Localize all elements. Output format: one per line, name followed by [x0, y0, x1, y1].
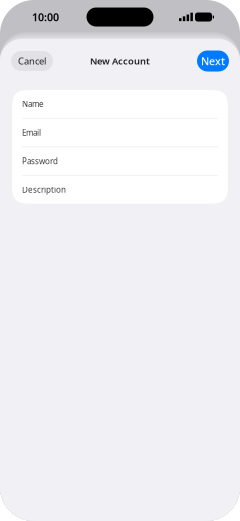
staticText: Password — [22, 156, 58, 166]
staticText: Email — [22, 127, 41, 138]
button[interactable]: Next — [197, 50, 229, 71]
staticText: 10:00 — [32, 10, 59, 24]
staticText: Next — [201, 54, 225, 68]
button[interactable]: Cancel — [11, 51, 53, 71]
staticText: Cancel — [18, 55, 46, 67]
button[interactable]: Email — [12, 118, 228, 146]
button[interactable]: Password — [12, 147, 228, 175]
staticText: Name — [22, 99, 44, 109]
staticText: Description — [22, 184, 66, 195]
button[interactable]: Description — [12, 176, 228, 204]
button[interactable]: Name — [12, 90, 228, 118]
staticText: New Account — [90, 55, 150, 67]
